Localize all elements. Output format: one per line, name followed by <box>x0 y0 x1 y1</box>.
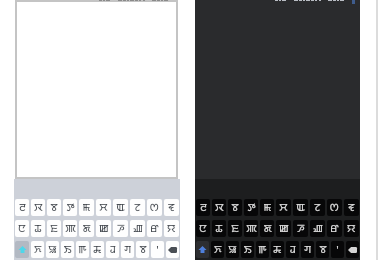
staticText: ꯚ <box>124 242 132 257</box>
staticText: ꯊ <box>215 221 223 236</box>
button[interactable]: ꯅ <box>196 220 210 237</box>
staticText: ꯕ <box>319 242 327 257</box>
staticText: ꯓ <box>168 200 175 215</box>
button[interactable]: ꯌ <box>344 220 359 237</box>
button[interactable]: ꯀ <box>276 220 291 237</box>
staticText: ꯅ <box>199 221 207 236</box>
staticText: ꯀ <box>99 221 109 236</box>
button[interactable]: ꯇ <box>63 199 77 216</box>
button[interactable]: ꯋ <box>212 199 226 216</box>
button[interactable]: ꯇ <box>244 199 258 216</box>
staticText: ꯗ <box>263 221 272 236</box>
staticText: ꯌ <box>167 221 176 236</box>
button[interactable]: ꯖ <box>310 199 325 216</box>
button[interactable]: Shift <box>196 241 209 258</box>
staticText: ꯗ <box>82 221 91 236</box>
button[interactable]: ꯌ <box>164 220 179 237</box>
button[interactable]: ꯎ <box>226 241 239 258</box>
staticText: ꯒ <box>78 242 87 257</box>
button[interactable]: ꯑ <box>293 199 308 216</box>
button[interactable]: ꯓ <box>344 199 359 216</box>
button[interactable]: ꯘ <box>91 241 104 258</box>
button[interactable]: ꯙ <box>106 241 119 258</box>
button[interactable]: ꯆ <box>276 199 291 216</box>
staticText: ꯆ <box>99 200 108 215</box>
staticText: ꯋ <box>215 200 224 215</box>
button[interactable]: ꯂ <box>15 199 29 216</box>
button[interactable]: ꯚ <box>121 241 134 258</box>
staticText: ꯆ <box>279 200 288 215</box>
staticText: ꯇ <box>247 200 256 215</box>
button[interactable]: ꯒ <box>76 241 89 258</box>
button[interactable]: ꯚ <box>301 241 314 258</box>
button[interactable]: ꯈ <box>211 241 224 258</box>
button[interactable]: ꯗ <box>79 220 94 237</box>
button[interactable]: ꯒ <box>256 241 269 258</box>
staticText: ꯄ <box>246 221 257 236</box>
button[interactable]: ꯕ <box>316 241 329 258</box>
staticText: ꯂ <box>19 200 26 215</box>
staticText: ꯍ <box>297 221 305 236</box>
button[interactable]: Backspace <box>346 241 359 258</box>
button[interactable]: ꯕ <box>228 199 242 216</box>
button[interactable]: ꯎ <box>46 241 59 258</box>
button[interactable]: ꯐ <box>228 220 242 237</box>
staticText: ꯈ <box>214 242 222 257</box>
staticText: ꯖ <box>134 200 141 215</box>
button[interactable]: ꯁ <box>327 199 342 216</box>
button[interactable]: ꯏ <box>241 241 254 258</box>
staticText: ꯒ <box>258 242 267 257</box>
button[interactable]: ꯁ <box>147 199 162 216</box>
staticText: ꯏ <box>244 242 252 257</box>
button[interactable]: ' <box>151 241 164 258</box>
button[interactable]: ꯉ <box>310 220 325 237</box>
staticText: ꯖ <box>314 200 321 215</box>
staticText: ꯋ <box>34 200 43 215</box>
button[interactable]: ꯔ <box>327 220 342 237</box>
staticText: ꯘ <box>273 242 282 257</box>
staticText: ꯚ <box>304 242 312 257</box>
staticText: ꯎ <box>228 242 237 257</box>
button[interactable]: ꯓ <box>164 199 179 216</box>
button[interactable]: ꯙ <box>286 241 299 258</box>
staticText: ꯉ <box>313 221 323 236</box>
button[interactable]: ꯘ <box>271 241 284 258</box>
button[interactable]: ꯗ <box>260 220 274 237</box>
staticText: ꯔ <box>330 221 339 236</box>
button[interactable]: ꯊ <box>212 220 226 237</box>
staticText: ꯌ <box>347 221 356 236</box>
button[interactable]: ' <box>331 241 344 258</box>
staticText: ꯎ <box>48 242 57 257</box>
button[interactable]: ꯂ <box>196 199 210 216</box>
staticText: ꯃ <box>263 200 272 215</box>
staticText: ꯊ <box>34 221 42 236</box>
button[interactable]: ꯃ <box>260 199 274 216</box>
button[interactable]: ꯄ <box>244 220 258 237</box>
button[interactable]: ꯕ <box>47 199 61 216</box>
button[interactable]: ꯖ <box>130 199 145 216</box>
button[interactable]: ꯍ <box>113 220 128 237</box>
button[interactable]: ꯑ <box>113 199 128 216</box>
button[interactable]: ꯆ <box>96 199 111 216</box>
button[interactable]: ꯐ <box>47 220 61 237</box>
button[interactable]: ꯉ <box>130 220 145 237</box>
staticText: ' <box>336 243 339 257</box>
button[interactable]: Backspace <box>166 241 179 258</box>
staticText: ꯕ <box>231 200 239 215</box>
staticText: ꯃ <box>82 200 91 215</box>
button[interactable]: ꯈ <box>31 241 44 258</box>
button[interactable]: ꯊ <box>31 220 45 237</box>
button[interactable]: ꯋ <box>31 199 45 216</box>
button[interactable]: ꯍ <box>293 220 308 237</box>
staticText: ꯓ <box>348 200 355 215</box>
button[interactable]: ꯏ <box>61 241 74 258</box>
staticText: ꯈ <box>34 242 42 257</box>
button[interactable]: ꯔ <box>147 220 162 237</box>
button[interactable]: ꯀ <box>96 220 111 237</box>
button[interactable]: ꯄ <box>63 220 77 237</box>
button[interactable]: ꯅ <box>15 220 29 237</box>
button[interactable]: ꯃ <box>79 199 94 216</box>
button[interactable]: ꯕ <box>136 241 149 258</box>
staticText: ꯑ <box>296 200 305 215</box>
button[interactable]: Shift <box>15 241 29 258</box>
